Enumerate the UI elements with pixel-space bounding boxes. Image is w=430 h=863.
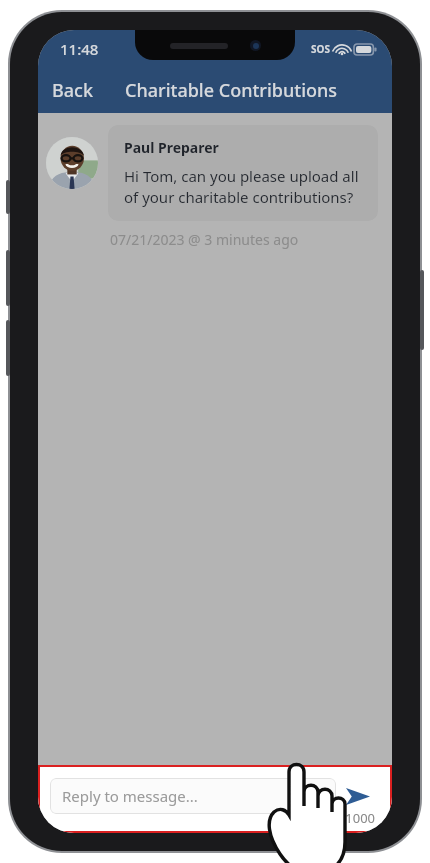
staticText: Back (52, 78, 93, 103)
staticText: SOS (311, 42, 330, 56)
staticText: Paul Preparer (124, 138, 219, 157)
button[interactable]: Back (38, 72, 103, 109)
staticText: Charitable Contributions (125, 78, 338, 103)
button[interactable]: Send message (336, 774, 380, 818)
staticText: Hi Tom, can you please upload all of you… (124, 166, 362, 208)
staticText: Reply to message... (62, 786, 198, 806)
staticText: 07/21/2023 @ 3 minutes ago (110, 230, 299, 249)
button[interactable]: Paul Preparer (108, 125, 378, 221)
staticText: 0/1000 (333, 809, 376, 827)
staticText: 11:48 (60, 39, 99, 59)
button[interactable]: Reply to message... (50, 778, 336, 814)
